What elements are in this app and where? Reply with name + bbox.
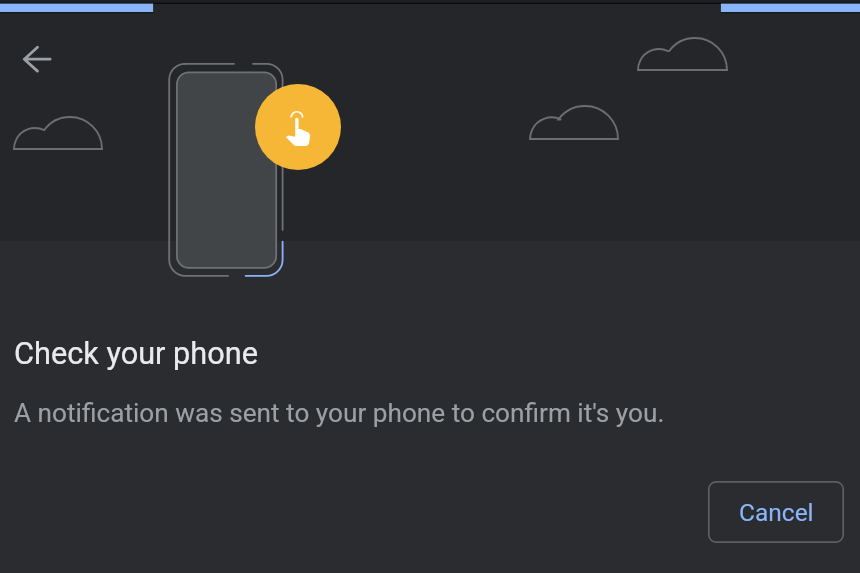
staticText: Cancel: [739, 498, 814, 527]
button[interactable]: Back: [13, 35, 61, 83]
button[interactable]: Cancel: [708, 481, 844, 543]
staticText: A notification was sent to your phone to…: [14, 398, 665, 429]
staticText: Check your phone: [14, 336, 258, 372]
